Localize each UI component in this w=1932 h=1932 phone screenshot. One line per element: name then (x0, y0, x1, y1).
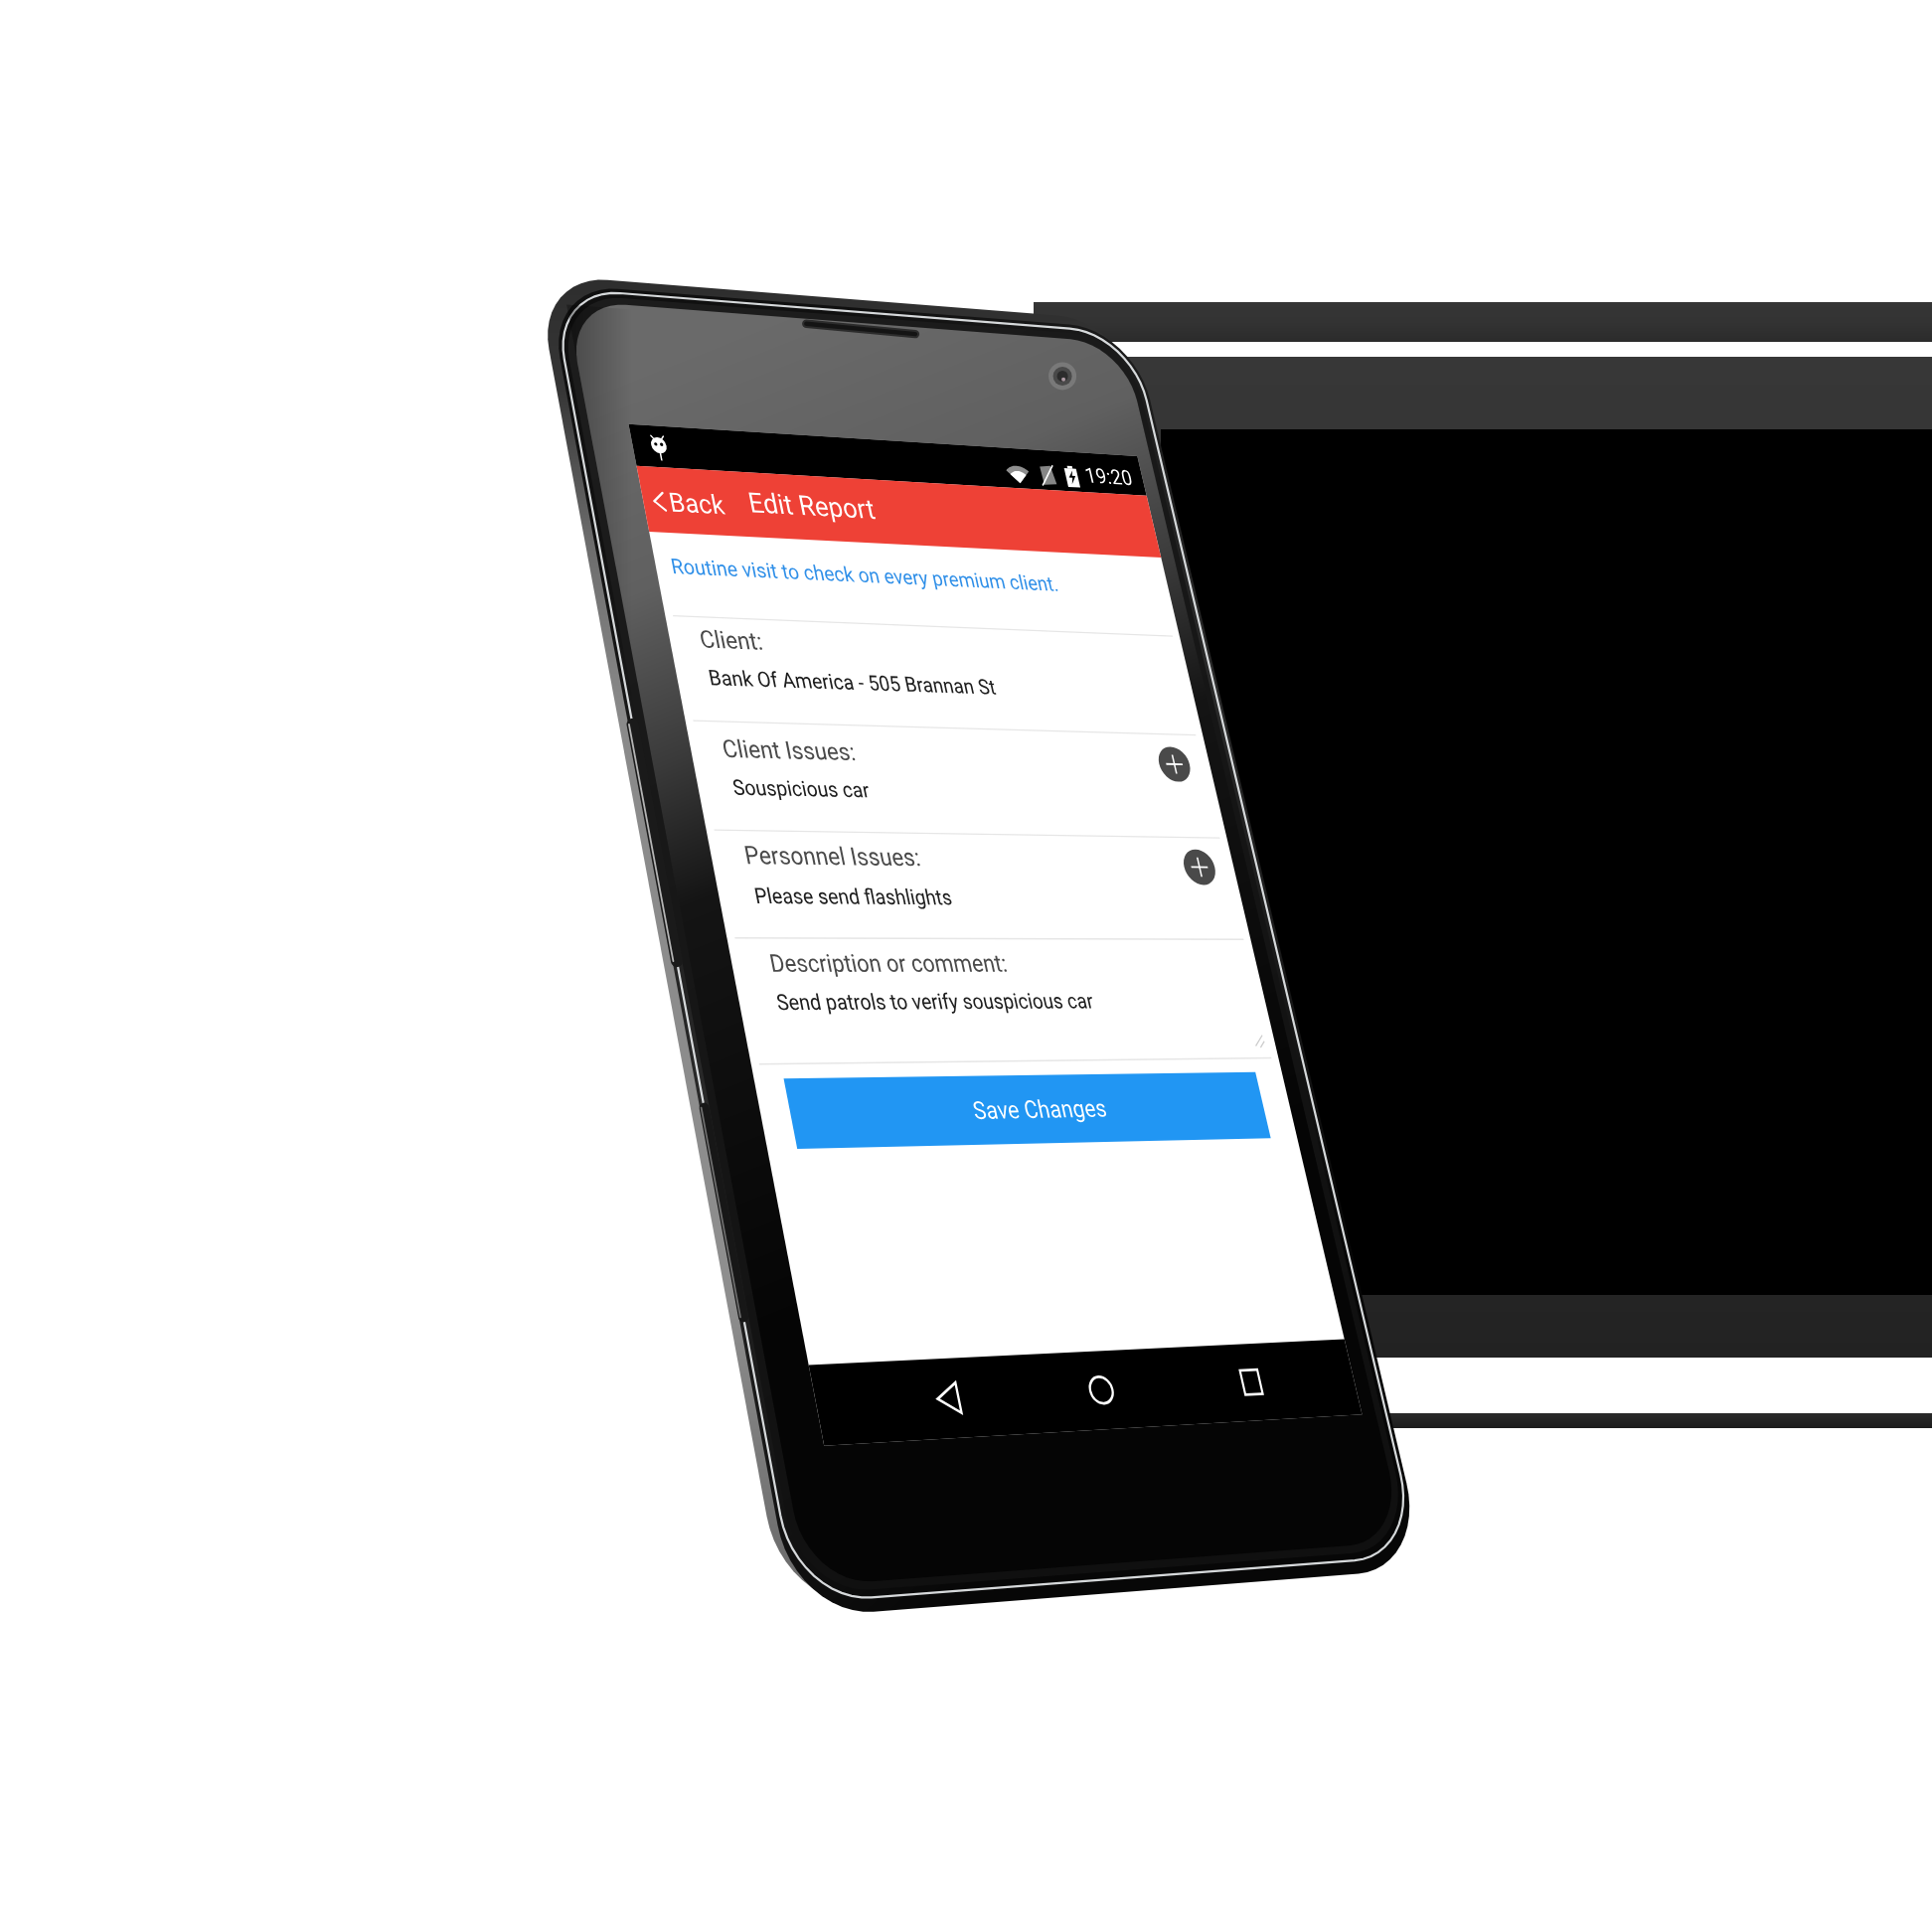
button[interactable]: Edit Report screen (0, 0, 1932, 1932)
